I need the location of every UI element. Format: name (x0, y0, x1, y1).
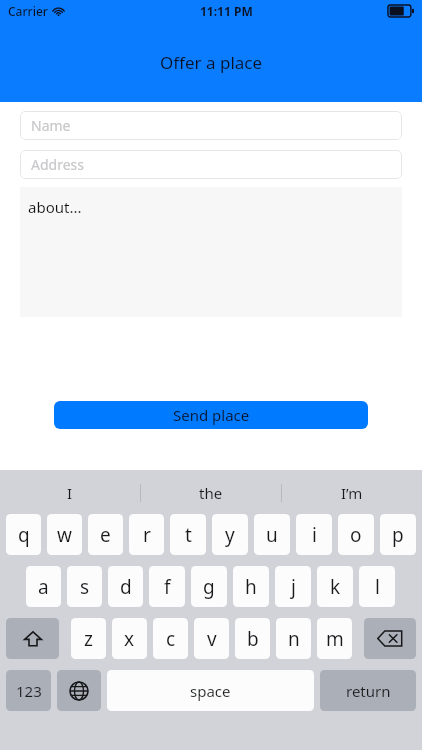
button[interactable]: g (191, 566, 227, 607)
staticText: m (326, 626, 344, 652)
staticText: space (190, 681, 231, 701)
button[interactable]: Address (20, 150, 402, 179)
staticText: u (266, 522, 278, 548)
staticText: b (247, 626, 259, 652)
button[interactable]: the (141, 474, 281, 512)
staticText: t (185, 522, 192, 548)
button[interactable]: v (194, 618, 229, 659)
staticText: a (38, 574, 49, 600)
button[interactable]: q (6, 514, 41, 555)
button[interactable]: s (67, 566, 102, 607)
staticText: s (80, 574, 90, 600)
button[interactable]: c (153, 618, 188, 659)
button[interactable]: Backspace (364, 618, 416, 659)
staticText: g (203, 574, 215, 600)
button[interactable]: j (275, 566, 311, 607)
button[interactable]: I (0, 474, 140, 512)
button[interactable]: m (317, 618, 352, 659)
button[interactable]: Shift (6, 618, 59, 659)
staticText: p (392, 522, 404, 548)
staticText: I’m (341, 483, 363, 503)
button[interactable]: b (235, 618, 270, 659)
button[interactable]: r (129, 514, 164, 555)
staticText: about... (28, 197, 82, 217)
staticText: r (143, 522, 151, 548)
staticText: e (100, 522, 111, 548)
button[interactable]: Change keyboard (57, 670, 101, 711)
button[interactable]: a (26, 566, 61, 607)
button[interactable]: 123 (6, 670, 51, 711)
staticText: Address (31, 155, 84, 174)
button[interactable]: n (276, 618, 311, 659)
button[interactable]: k (317, 566, 353, 607)
button[interactable]: about... (20, 187, 402, 317)
staticText: I (67, 483, 73, 503)
staticText: Carrier (8, 3, 48, 19)
staticText: n (288, 626, 300, 652)
staticText: v (207, 626, 217, 652)
staticText: d (120, 574, 132, 600)
staticText: o (350, 522, 362, 548)
button[interactable]: w (47, 514, 82, 555)
button[interactable]: Send place (54, 401, 368, 429)
button[interactable]: f (149, 566, 185, 607)
staticText: Name (31, 116, 71, 135)
button[interactable]: y (212, 514, 248, 555)
staticText: h (245, 574, 257, 600)
staticText: Offer a place (160, 51, 263, 74)
staticText: q (18, 522, 30, 548)
staticText: 11:11 PM (200, 3, 253, 19)
button[interactable]: d (108, 566, 143, 607)
button[interactable]: t (170, 514, 206, 555)
staticText: 123 (16, 681, 42, 701)
staticText: i (312, 522, 317, 548)
button[interactable]: Name (20, 111, 402, 140)
staticText: c (166, 626, 176, 652)
button[interactable]: u (254, 514, 290, 555)
button[interactable]: I’m (282, 474, 422, 512)
staticText: f (164, 574, 171, 600)
button[interactable]: h (233, 566, 269, 607)
button[interactable]: space (107, 670, 314, 711)
staticText: x (124, 626, 135, 652)
button[interactable]: o (338, 514, 374, 555)
button[interactable]: return (320, 670, 416, 711)
staticText: y (225, 522, 235, 548)
staticText: return (346, 681, 391, 701)
staticText: z (84, 626, 93, 652)
staticText: l (375, 574, 380, 600)
button[interactable]: p (380, 514, 416, 555)
staticText: j (291, 574, 296, 600)
staticText: w (57, 522, 72, 548)
staticText: the (199, 483, 223, 503)
button[interactable]: e (88, 514, 123, 555)
button[interactable]: x (112, 618, 147, 659)
staticText: k (330, 574, 341, 600)
button[interactable]: l (359, 566, 395, 607)
button[interactable]: i (296, 514, 332, 555)
staticText: Send place (173, 405, 250, 425)
button[interactable]: z (71, 618, 106, 659)
